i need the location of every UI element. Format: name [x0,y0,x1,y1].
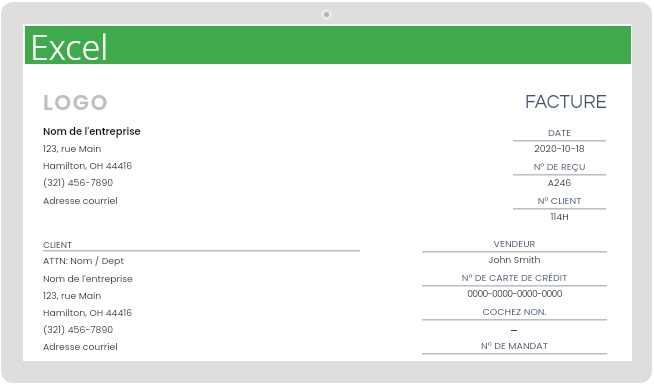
staticText: A246 [513,176,606,189]
staticText: CLIENT [43,239,72,252]
staticText: Excel [30,24,109,62]
staticText: N° DE REÇU [513,160,606,173]
staticText: 123, rue Main [43,289,102,302]
staticText: Nom de l'entreprise [43,272,133,285]
staticText: ATTN: Nom / Dept [43,254,124,267]
staticText: LOGO [43,88,109,117]
staticText: John Smith [422,253,607,266]
button[interactable]: Excel [25,26,631,64]
staticText: Hamilton, OH 44416 [43,159,133,172]
staticText: 2020-10-18 [513,142,606,155]
staticText: Adresse courriel [43,340,118,353]
staticText: N° DE CARTE DE CRÉDIT [422,271,607,284]
staticText: N° DE MANDAT [422,339,607,352]
staticText: 114H [513,210,606,223]
staticText: FACTURE [525,93,607,112]
staticText: Adresse courriel [43,194,118,207]
staticText: (321) 456-7890 [43,323,114,336]
staticText: Hamilton, OH 44416 [43,306,133,319]
staticText [422,321,607,335]
staticText: 123, rue Main [43,142,102,155]
staticText: COCHEZ NON. [422,305,607,318]
staticText: 0000-0000-0000-0000 [422,287,607,300]
staticText: N° CLIENT [513,194,606,207]
staticText: (321) 456-7890 [43,176,114,189]
staticText: VENDEUR [422,237,607,250]
staticText: Nom de l'entreprise [43,125,141,139]
staticText: DATE [513,126,606,139]
